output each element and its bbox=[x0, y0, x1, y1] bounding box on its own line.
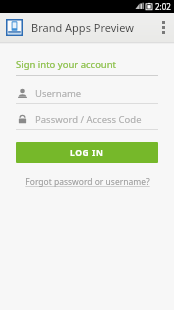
staticText: 2:02 bbox=[155, 1, 171, 12]
staticText: Sign into your account bbox=[16, 58, 117, 71]
button[interactable]: More options bbox=[152, 13, 174, 42]
button[interactable]: Forgot password or username? bbox=[16, 176, 158, 188]
staticText: Brand Apps Preview bbox=[31, 20, 134, 35]
button[interactable]: App icon bbox=[5, 18, 24, 37]
button[interactable]: LOG IN bbox=[16, 142, 158, 163]
staticText: Username bbox=[35, 87, 82, 100]
staticText: Password / Access Code bbox=[35, 113, 142, 126]
button[interactable]: Password bbox=[16, 113, 158, 130]
staticText: LOG IN bbox=[70, 147, 104, 159]
button[interactable]: Username bbox=[16, 87, 158, 104]
staticText: Forgot password or username? bbox=[25, 176, 150, 188]
